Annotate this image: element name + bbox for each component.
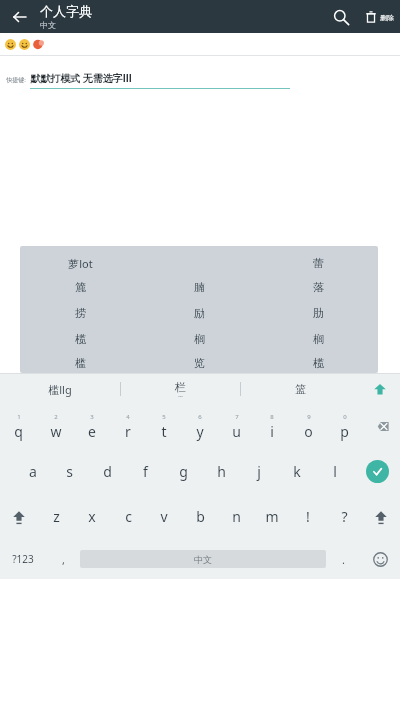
button[interactable]: Backspace — [362, 404, 400, 449]
staticText: 榈 — [194, 332, 205, 346]
button[interactable]: Delete — [363, 9, 394, 25]
button[interactable]: 0 — [326, 404, 362, 449]
staticText: x — [88, 507, 96, 526]
staticText: 快捷键: — [6, 76, 26, 84]
button[interactable]: 中文 — [80, 550, 326, 568]
staticText: 1 — [17, 413, 21, 421]
button[interactable]: 7 — [218, 404, 254, 449]
button[interactable]: 榈 — [140, 326, 259, 352]
staticText: ••• — [178, 394, 183, 399]
staticText: c — [125, 507, 132, 526]
button[interactable]: x — [74, 494, 110, 539]
staticText: 篮 — [295, 382, 306, 396]
button[interactable]: 6 — [182, 404, 218, 449]
staticText: d — [103, 462, 112, 481]
button[interactable]: 榄 — [20, 326, 140, 352]
staticText: a — [29, 462, 37, 481]
button[interactable]: Enter — [354, 449, 400, 494]
staticText: 腩 — [194, 280, 205, 294]
button[interactable]: 落 — [259, 274, 378, 300]
button[interactable]: , — [46, 539, 80, 579]
staticText: k — [293, 462, 301, 481]
button[interactable]: Expand candidates — [360, 374, 400, 404]
button[interactable]: 蕾 — [259, 252, 378, 274]
staticText: 肋 — [313, 306, 324, 320]
button[interactable]: 萝lot — [20, 252, 140, 274]
button[interactable]: c — [110, 494, 146, 539]
button[interactable]: 1 — [0, 404, 37, 449]
staticText: ?123 — [12, 552, 34, 566]
button[interactable]: 览 — [140, 352, 259, 373]
button[interactable]: 篮 — [241, 374, 360, 404]
button[interactable]: b — [182, 494, 218, 539]
staticText: 8 — [270, 413, 274, 421]
button[interactable]: 4 — [110, 404, 146, 449]
staticText: 4 — [126, 413, 130, 421]
button[interactable]: s — [51, 449, 88, 494]
button[interactable]: Shift — [362, 494, 400, 539]
staticText: h — [217, 462, 226, 481]
staticText: 槛llg — [48, 382, 72, 397]
staticText: 簏 — [75, 280, 86, 294]
staticText: 榄 — [75, 332, 86, 346]
button[interactable]: Search — [327, 3, 355, 31]
staticText: 中文 — [194, 554, 212, 565]
button[interactable]: 萝lot — [20, 246, 378, 373]
button[interactable]: Shift — [0, 494, 38, 539]
button[interactable]: Back — [6, 3, 34, 31]
staticText: l — [333, 462, 337, 481]
button[interactable]: 8 — [254, 404, 290, 449]
button[interactable]: ! — [290, 494, 326, 539]
button[interactable]: 捞 — [20, 300, 140, 326]
button[interactable]: 簏 — [20, 274, 140, 300]
button[interactable]: 9 — [290, 404, 326, 449]
staticText: 删除 — [380, 13, 394, 22]
staticText: m — [265, 507, 279, 526]
button[interactable]: f — [126, 449, 164, 494]
staticText: 蕾 — [313, 256, 324, 270]
staticText: e — [88, 422, 96, 441]
button[interactable]: j — [240, 449, 278, 494]
button[interactable]: d — [88, 449, 126, 494]
staticText: 6 — [198, 413, 202, 421]
button[interactable]: m — [254, 494, 290, 539]
button[interactable]: n — [218, 494, 254, 539]
button[interactable]: v — [146, 494, 182, 539]
button[interactable]: k — [278, 449, 316, 494]
button[interactable]: 栏 — [121, 374, 240, 404]
button[interactable]: l — [316, 449, 354, 494]
button[interactable]: z — [38, 494, 74, 539]
staticText: 览 — [194, 356, 205, 370]
staticText: 个人字典 — [40, 3, 92, 19]
staticText: 萝lot — [68, 256, 93, 271]
staticText: 榄 — [313, 356, 324, 370]
button[interactable]: 2 — [37, 404, 74, 449]
button[interactable]: 5 — [146, 404, 182, 449]
button[interactable]: a — [14, 449, 51, 494]
button[interactable]: . — [326, 539, 360, 579]
staticText: s — [66, 462, 73, 481]
button[interactable]: h — [202, 449, 240, 494]
staticText: 默默打模式 无需选字lll — [30, 71, 132, 85]
button[interactable]: 肋 — [259, 300, 378, 326]
button[interactable]: ?123 — [0, 539, 46, 579]
button[interactable]: 榈 — [259, 326, 378, 352]
button[interactable]: 腩 — [140, 274, 259, 300]
button[interactable]: g — [164, 449, 202, 494]
staticText: q — [14, 422, 23, 441]
staticText: 落 — [313, 280, 324, 294]
button[interactable]: 槛llg — [0, 374, 120, 404]
staticText: 0 — [343, 413, 347, 421]
button[interactable]: 榄 — [259, 352, 378, 373]
staticText: g — [179, 462, 188, 481]
button[interactable]: 3 — [74, 404, 110, 449]
button[interactable]: Emoji — [360, 539, 400, 579]
staticText: 榈 — [313, 332, 324, 346]
button[interactable]: 槛 — [20, 352, 140, 373]
staticText: v — [160, 507, 168, 526]
button[interactable]: ? — [326, 494, 362, 539]
button[interactable]: 励 — [140, 300, 259, 326]
staticText: 捞 — [75, 306, 86, 320]
staticText: , — [62, 552, 65, 567]
